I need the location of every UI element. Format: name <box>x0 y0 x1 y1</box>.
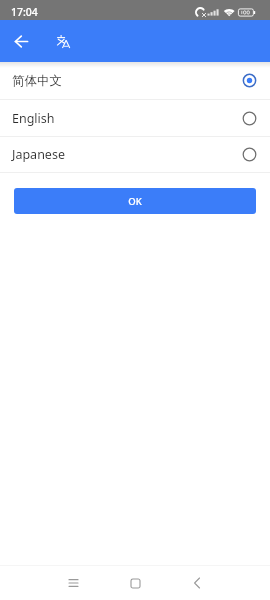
staticText: 简体中文 <box>12 73 62 89</box>
button[interactable]: Back <box>177 566 217 600</box>
button[interactable]: Japanese <box>0 137 270 172</box>
staticText: English <box>12 110 55 127</box>
staticText: Japanese <box>12 146 65 163</box>
button[interactable]: English <box>0 100 270 136</box>
button[interactable]: Translate <box>42 20 84 62</box>
staticText: OK <box>128 195 142 208</box>
staticText: 17:04 <box>11 5 38 19</box>
button[interactable]: 简体中文 <box>0 62 270 99</box>
button[interactable]: Recents <box>53 566 93 600</box>
button[interactable]: Back <box>0 20 42 62</box>
button[interactable]: OK <box>14 188 256 214</box>
button[interactable]: Home <box>115 566 155 600</box>
